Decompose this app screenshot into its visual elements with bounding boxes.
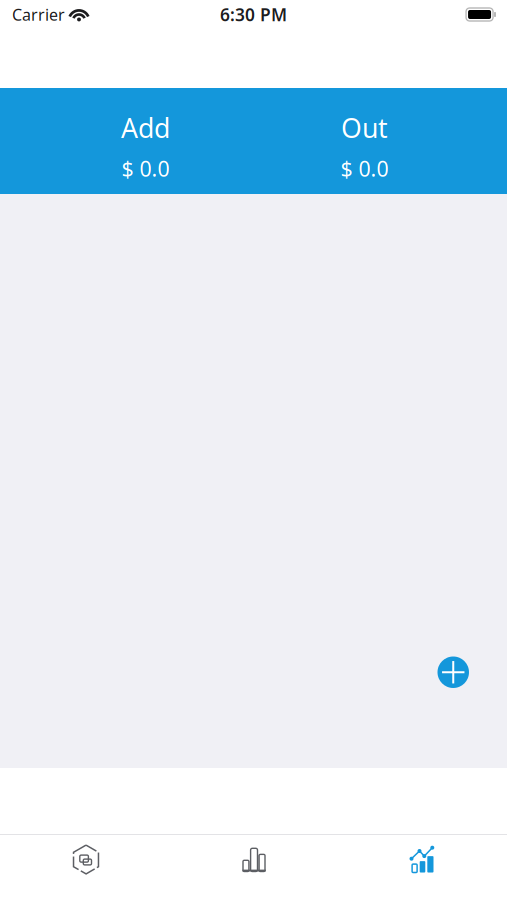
staticText: $ 0.0	[121, 154, 169, 183]
staticText: Add	[121, 110, 170, 145]
staticText: 6:30 PM	[220, 3, 287, 26]
button[interactable]: Add transaction	[437, 656, 469, 688]
button[interactable]: Reports	[338, 835, 507, 884]
button[interactable]: Accounts	[0, 835, 169, 884]
staticText: $ 0.0	[340, 154, 388, 183]
staticText: Carrier	[12, 4, 65, 25]
button[interactable]: Statistics	[169, 835, 338, 884]
staticText: Out	[341, 110, 388, 145]
